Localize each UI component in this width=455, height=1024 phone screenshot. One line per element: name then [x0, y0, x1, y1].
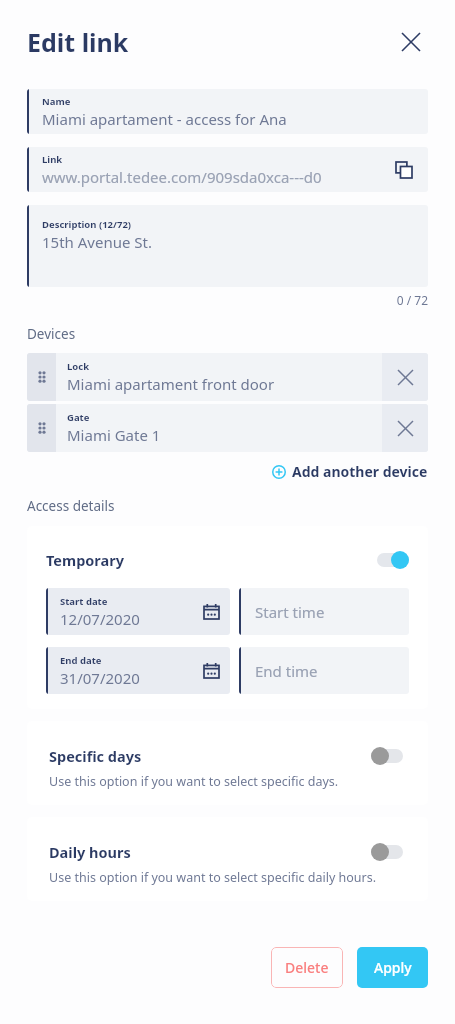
button[interactable]: Link	[27, 147, 428, 192]
button[interactable]: Toggle on	[371, 551, 409, 569]
staticText: End time	[255, 661, 318, 681]
staticText: Apply	[374, 958, 412, 977]
button[interactable]: Description (12/72)	[27, 205, 428, 287]
staticText: Temporary	[46, 550, 371, 570]
staticText: 15th Avenue St.	[42, 232, 152, 252]
staticText: Edit link	[27, 25, 394, 59]
button[interactable]: Name	[27, 89, 428, 134]
button[interactable]: Close	[394, 25, 428, 59]
button[interactable]: Delete	[271, 947, 343, 988]
staticText: Specific days	[49, 746, 142, 766]
staticText: Miami apartament - access for Ana	[42, 109, 287, 129]
staticText: 0 / 72	[27, 292, 428, 308]
staticText: Link	[42, 153, 63, 166]
staticText: Use this option if you want to select sp…	[49, 773, 339, 790]
staticText: Daily hours	[49, 842, 131, 862]
staticText: www.portal.tedee.com/909sda0xca---d0	[42, 167, 322, 187]
button[interactable]: Start time	[239, 588, 409, 635]
button[interactable]: Toggle off	[371, 747, 409, 765]
staticText: Start time	[255, 602, 325, 622]
staticText: Name	[42, 95, 71, 108]
staticText: Miami apartament front door	[67, 374, 275, 394]
button[interactable]: End time	[239, 647, 409, 694]
button[interactable]: Daily hours	[27, 817, 428, 901]
button[interactable]: Remove Gate	[382, 404, 428, 452]
staticText: Miami Gate 1	[67, 425, 161, 445]
staticText: Devices	[27, 325, 76, 343]
staticText: 12/07/2020	[60, 609, 140, 629]
button[interactable]: Remove Lock	[382, 353, 428, 401]
staticText: Access details	[27, 497, 115, 515]
staticText: Delete	[285, 958, 329, 977]
button[interactable]: End date	[46, 647, 230, 694]
button[interactable]: Start date	[46, 588, 230, 635]
staticText: Description (12/72)	[42, 218, 132, 231]
staticText: Gate	[67, 411, 90, 424]
button[interactable]: Add another device	[272, 459, 428, 484]
button[interactable]: Copy link	[380, 147, 428, 192]
staticText: 31/07/2020	[60, 668, 140, 688]
button[interactable]: Specific days	[27, 721, 428, 805]
staticText: Lock	[67, 360, 90, 373]
button[interactable]: Apply	[357, 947, 428, 988]
staticText: Use this option if you want to select sp…	[49, 869, 377, 886]
button[interactable]: Toggle off	[371, 843, 409, 861]
button[interactable]: Gate	[27, 404, 428, 452]
button[interactable]: Lock	[27, 353, 428, 401]
staticText: End date	[60, 654, 102, 667]
staticText: Add another device	[292, 462, 428, 481]
staticText: Start date	[60, 595, 108, 608]
